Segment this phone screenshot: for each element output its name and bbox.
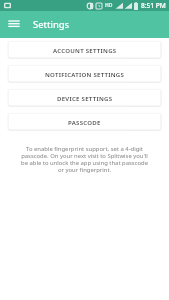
button[interactable]: NOTIFICATION SETTINGS: [8, 65, 161, 82]
staticText: HD: [105, 2, 113, 9]
staticText: DEVICE SETTINGS: [57, 94, 113, 102]
button[interactable]: PASSCODE: [8, 113, 161, 130]
staticText: To enable fingerprint support, set a 4-d…: [18, 145, 151, 174]
staticText: NOTIFICATION SETTINGS: [45, 70, 125, 78]
staticText: PASSCODE: [68, 118, 101, 126]
staticText: Settings: [33, 18, 70, 31]
staticText: 8:51 PM: [141, 1, 166, 10]
staticText: ACCOUNT SETTINGS: [53, 46, 117, 54]
button[interactable]: ACCOUNT SETTINGS: [8, 41, 161, 58]
button[interactable]: Open navigation menu: [0, 11, 28, 38]
button[interactable]: DEVICE SETTINGS: [8, 89, 161, 106]
